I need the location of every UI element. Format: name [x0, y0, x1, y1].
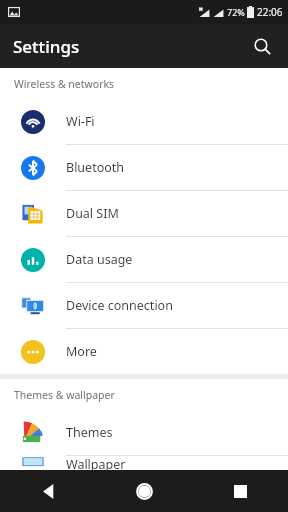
staticText: More: [66, 343, 97, 360]
staticText: Wallpaper: [66, 456, 126, 470]
button[interactable]: Data usage: [0, 237, 288, 282]
staticText: Dual SIM: [66, 205, 119, 222]
staticText: Themes: [66, 424, 113, 441]
button[interactable]: Wi-Fi: [0, 99, 288, 144]
staticText: Data usage: [66, 251, 133, 268]
button[interactable]: Search: [244, 28, 280, 64]
button[interactable]: Themes: [0, 410, 288, 455]
staticText: Bluetooth: [66, 159, 125, 176]
button[interactable]: Home: [96, 470, 192, 512]
button[interactable]: More: [0, 329, 288, 374]
staticText: Wi-Fi: [66, 113, 95, 130]
button[interactable]: Back: [0, 470, 96, 512]
button[interactable]: Bluetooth: [0, 145, 288, 190]
staticText: Themes & wallpaper: [14, 388, 115, 402]
button[interactable]: Recent apps: [192, 470, 288, 512]
button[interactable]: Wallpaper: [0, 456, 288, 470]
staticText: 22:06: [257, 5, 283, 19]
staticText: Device connection: [66, 297, 173, 314]
button[interactable]: Device connection: [0, 283, 288, 328]
staticText: Settings: [13, 35, 80, 58]
staticText: 72%: [227, 6, 245, 18]
staticText: Wireless & networks: [14, 77, 115, 91]
button[interactable]: Dual SIM: [0, 191, 288, 236]
